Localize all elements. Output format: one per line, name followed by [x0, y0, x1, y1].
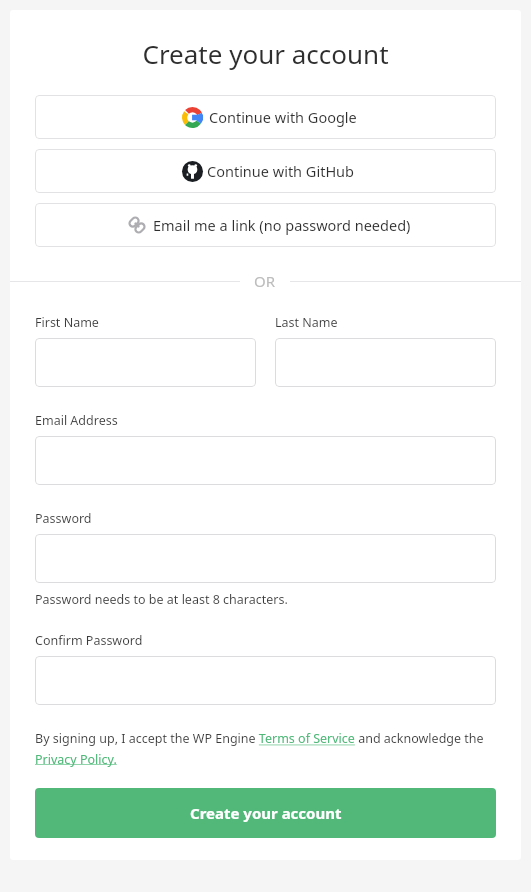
staticText: OR	[254, 271, 276, 291]
button[interactable]: Create your account	[35, 788, 496, 838]
staticText: Continue with Google	[209, 107, 357, 127]
staticText: Last Name	[275, 314, 338, 331]
button[interactable]	[35, 656, 496, 705]
staticText: Continue with GitHub	[207, 161, 355, 181]
button[interactable]: Continue with Google	[35, 95, 496, 139]
staticText: Password	[35, 510, 92, 527]
staticText: By signing up, I accept the WP Engine Te…	[35, 730, 496, 767]
staticText: Confirm Password	[35, 632, 143, 649]
button[interactable]	[35, 436, 496, 485]
button[interactable]	[275, 338, 496, 387]
staticText: First Name	[35, 314, 99, 331]
staticText: Email Address	[35, 412, 118, 429]
staticText: Password needs to be at least 8 characte…	[35, 591, 288, 608]
staticText: Create your account	[190, 803, 342, 823]
staticText: Email me a link (no password needed)	[153, 215, 411, 235]
button[interactable]	[35, 534, 496, 583]
staticText: Create your account	[10, 36, 521, 71]
button[interactable]: Continue with GitHub	[35, 149, 496, 193]
button[interactable]: Email me a link (no password needed)	[35, 203, 496, 247]
button[interactable]	[35, 338, 256, 387]
